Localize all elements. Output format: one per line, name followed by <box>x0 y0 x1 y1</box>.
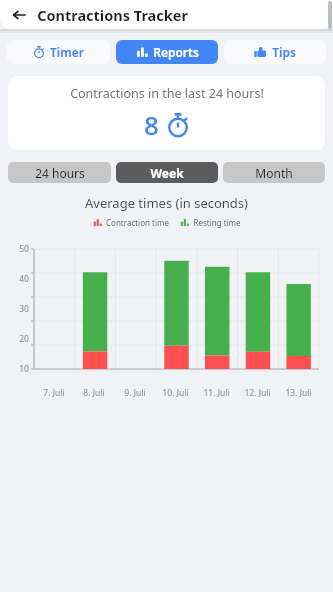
staticText: 30 <box>19 303 29 315</box>
staticText: 24 hours <box>35 165 85 181</box>
staticText: Contractions Tracker <box>37 5 188 25</box>
button[interactable]: Tips <box>224 40 326 64</box>
staticText: 11. Juli <box>203 387 230 399</box>
staticText: Timer <box>50 44 84 60</box>
staticText: Contraction time <box>106 217 169 228</box>
other: Timer <box>166 113 190 137</box>
staticText: 10 <box>19 363 29 375</box>
button[interactable]: Week <box>116 162 218 183</box>
staticText: 8 <box>144 107 159 142</box>
staticText: 12. Juli <box>244 387 271 399</box>
staticText: 20 <box>19 333 29 345</box>
staticText: 13. Juli <box>285 387 312 399</box>
button[interactable]: 24 hours <box>8 162 111 183</box>
button[interactable]: Contractions in the last 24 hours! <box>8 76 325 150</box>
staticText: Month <box>255 165 293 181</box>
staticText: Average times (in seconds) <box>85 194 248 212</box>
staticText: 10. Juli <box>162 387 189 399</box>
staticText: Contractions in the last 24 hours! <box>70 85 264 102</box>
staticText: Tips <box>272 44 296 60</box>
staticText: 7. Juli <box>43 387 65 399</box>
staticText: 50 <box>19 243 29 255</box>
button[interactable]: Timer <box>7 40 110 64</box>
staticText: 40 <box>19 273 29 285</box>
staticText: 8. Juli <box>83 387 105 399</box>
button[interactable]: Back <box>8 4 30 26</box>
staticText: Resting time <box>193 217 241 228</box>
button[interactable]: Month <box>223 162 325 183</box>
other: Timer <box>33 46 45 58</box>
staticText: 9. Juli <box>124 387 146 399</box>
staticText: Reports <box>153 44 199 60</box>
button[interactable]: Reports <box>116 40 218 64</box>
staticText: Week <box>150 165 184 181</box>
